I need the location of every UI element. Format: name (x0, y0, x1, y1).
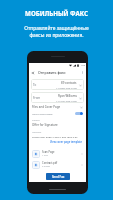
staticText: Files and Cover Page (32, 105, 61, 109)
staticText: Send Fax (52, 175, 65, 179)
staticText: Offer for Signature (32, 123, 58, 127)
staticText: Ryan Williams (58, 94, 77, 98)
button[interactable]: To (31, 79, 84, 90)
staticText: +1 (415) 555-1002 (56, 99, 77, 102)
staticText: From (33, 96, 41, 100)
button[interactable]: Send Fax (46, 173, 70, 180)
staticText: Subject (32, 119, 40, 122)
button[interactable]: From (31, 92, 84, 103)
button[interactable]: Scan Page (32, 148, 83, 159)
other: More options (81, 70, 84, 75)
button[interactable]: Subject (32, 119, 83, 127)
staticText: Contract.pdf (42, 161, 58, 165)
staticText: +1 (800) 555-0199 (56, 86, 77, 89)
staticText: Отправить факс (38, 70, 66, 75)
staticText: 3 pages (42, 165, 51, 168)
staticText: View cover page template (50, 140, 83, 144)
staticText: Scan Page (42, 150, 55, 154)
staticText: 89 contacts (61, 81, 77, 85)
button[interactable]: Files and Cover Page (32, 105, 83, 115)
button[interactable]: Contract.pdf (32, 159, 83, 170)
button[interactable]: Back (29, 68, 86, 77)
staticText: Add a cover page (32, 112, 53, 115)
staticText: Please sign page 4 and 5 and return by F… (32, 135, 83, 138)
staticText: Message (32, 131, 42, 134)
staticText: 100 (81, 64, 85, 67)
staticText: Отправляйте защищённые факсы из приложен… (24, 25, 89, 39)
button[interactable]: View cover page template (50, 140, 83, 144)
other: Back (31, 71, 35, 75)
staticText: МОБИЛЬНЫЙ ФАКС (25, 9, 88, 17)
staticText: 1 PDF (42, 154, 48, 157)
staticText: To (33, 83, 37, 87)
